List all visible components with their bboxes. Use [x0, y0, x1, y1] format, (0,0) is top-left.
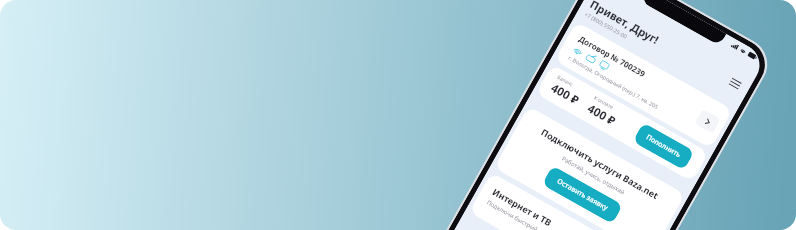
staticText: Интернет и ТВ [491, 185, 554, 228]
button[interactable]: Интернет и ТВ [469, 172, 648, 230]
staticText: Оставить заявку [555, 176, 610, 213]
staticText: Подключи быстрый интернет [485, 198, 564, 230]
staticText: Пополнить [644, 132, 683, 160]
staticText: +7 (800) 550-25-00 [584, 10, 629, 40]
staticText: Баланс [556, 74, 575, 89]
staticText: Договор № 700239 [577, 33, 648, 79]
staticText: 400 ₽ [585, 100, 619, 129]
staticText: 400 ₽ [548, 80, 582, 109]
staticText: Подключить услуги Baza.net [539, 125, 661, 201]
button[interactable]: Подключить услуги Baza.net [494, 106, 685, 230]
button[interactable]: Договор № 700239 [554, 21, 733, 149]
button[interactable]: Меню [726, 74, 745, 93]
button[interactable]: Пополнить [632, 122, 695, 170]
staticText: г. Вологда, Огородный (пер.) 7, кв. 205 [567, 54, 660, 110]
staticText: Привет, Друг! [588, 0, 662, 47]
button[interactable]: Баланс [535, 64, 709, 182]
button[interactable]: Оставить заявку [542, 165, 623, 224]
staticText: Работай, учись, отдыхай [560, 155, 626, 196]
button[interactable]: Подробнее [694, 109, 721, 134]
staticText: К оплате [592, 94, 615, 111]
